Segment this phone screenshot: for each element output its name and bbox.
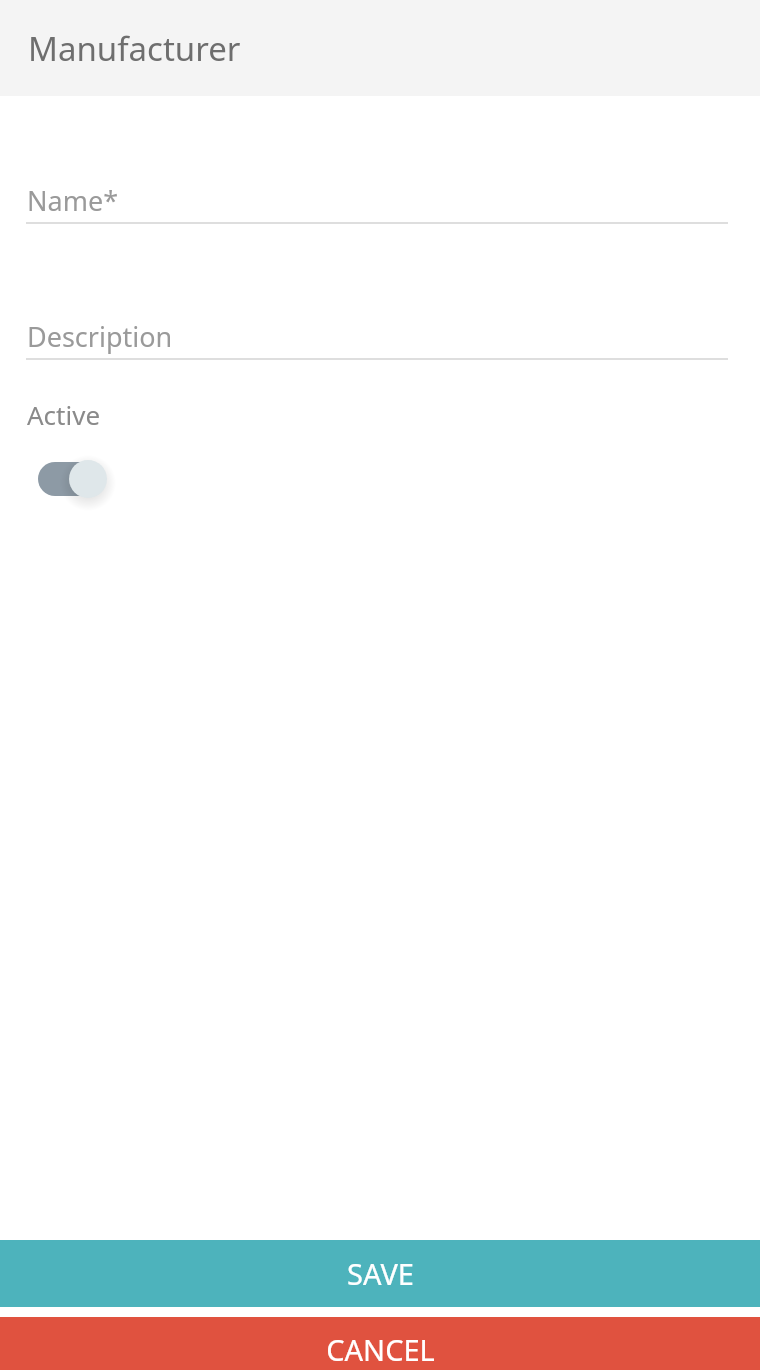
staticText: Name* [27,182,119,219]
staticText: Active [27,397,101,432]
button[interactable]: CANCEL [0,1317,760,1370]
button[interactable]: SAVE [0,1240,760,1307]
staticText: Manufacturer [28,26,241,71]
staticText: Description [27,318,173,355]
button[interactable]: Active toggle, on [30,450,118,508]
button[interactable]: Name* [26,178,728,222]
staticText: SAVE [347,1254,414,1293]
button[interactable]: Description [26,314,728,358]
staticText: CANCEL [326,1330,435,1369]
